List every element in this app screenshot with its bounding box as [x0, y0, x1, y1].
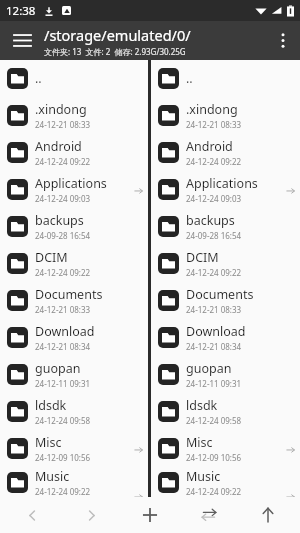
staticText: 24-12-11 09:31 [186, 378, 242, 389]
staticText: guopan [35, 360, 81, 377]
staticText: DCIM [35, 249, 68, 266]
button[interactable]: guopan [151, 356, 300, 393]
staticText: Misc [186, 434, 213, 451]
staticText: 24-12-24 09:22 [186, 156, 242, 167]
button[interactable]: More options [266, 21, 300, 60]
staticText: Download [35, 323, 95, 340]
staticText: Documents [186, 286, 254, 303]
staticText: .. [186, 70, 193, 87]
button[interactable]: Go to parent folder [241, 497, 295, 533]
button[interactable]: Android [151, 134, 300, 171]
staticText: 24-12-24 09:22 [186, 486, 242, 497]
button[interactable]: Applications [0, 171, 148, 208]
staticText: 24-12-09 10:56 [186, 452, 242, 463]
staticText: 24-12-21 08:33 [186, 304, 242, 315]
staticText: 24-12-21 08:34 [186, 341, 242, 352]
button[interactable]: Open navigation menu [0, 21, 44, 60]
staticText: 24-12-24 09:22 [186, 267, 242, 278]
button[interactable]: Android [0, 134, 148, 171]
button[interactable]: ldsdk [151, 393, 300, 430]
staticText: Android [35, 138, 82, 155]
staticText: 24-12-11 09:31 [35, 378, 91, 389]
button[interactable]: Swap panes [182, 497, 236, 533]
staticText: backups [35, 212, 84, 229]
staticText: 24-12-21 08:33 [35, 304, 91, 315]
button[interactable]: .. [0, 60, 148, 97]
staticText: 文件夹: 13 文件: 2 储存: 2.93G/30.25G [44, 46, 186, 57]
button[interactable]: .xindong [0, 97, 148, 134]
staticText: guopan [186, 360, 232, 377]
staticText: .xindong [35, 101, 87, 118]
staticText: Misc [35, 434, 62, 451]
button[interactable]: backups [151, 208, 300, 245]
button[interactable]: Download [0, 319, 148, 356]
button[interactable]: DCIM [0, 245, 148, 282]
button[interactable]: Misc [0, 430, 148, 467]
button[interactable]: guopan [0, 356, 148, 393]
button[interactable]: Documents [0, 282, 148, 319]
button[interactable]: Music [151, 467, 300, 497]
button[interactable]: .. [151, 60, 300, 97]
button[interactable]: Navigate forward [64, 497, 118, 533]
staticText: Music [186, 468, 221, 485]
button[interactable]: ldsdk [0, 393, 148, 430]
staticText: /storage/emulated/0/ [44, 25, 191, 45]
button[interactable]: Create new [123, 497, 177, 533]
staticText: Download [186, 323, 246, 340]
staticText: 24-12-21 08:34 [35, 341, 91, 352]
staticText: Android [186, 138, 233, 155]
staticText: 24-12-24 09:22 [35, 156, 91, 167]
staticText: 24-12-24 09:58 [186, 415, 242, 426]
staticText: ldsdk [35, 397, 67, 414]
staticText: 24-12-24 09:22 [35, 486, 91, 497]
staticText: 24-12-24 09:22 [35, 267, 91, 278]
button[interactable]: Music [0, 467, 148, 497]
staticText: 24-12-24 09:03 [186, 193, 242, 204]
staticText: Documents [35, 286, 103, 303]
button[interactable]: DCIM [151, 245, 300, 282]
button[interactable]: Download [151, 319, 300, 356]
button[interactable]: Navigate back [5, 497, 59, 533]
staticText: Music [35, 468, 70, 485]
staticText: DCIM [186, 249, 219, 266]
button[interactable]: Misc [151, 430, 300, 467]
button[interactable]: Applications [151, 171, 300, 208]
staticText: .xindong [186, 101, 238, 118]
staticText: .. [35, 70, 42, 87]
staticText: Applications [186, 175, 258, 192]
staticText: 24-12-21 08:33 [186, 119, 242, 130]
staticText: 24-12-21 08:33 [35, 119, 91, 130]
staticText: 12:38 [6, 3, 36, 19]
staticText: Applications [35, 175, 107, 192]
staticText: 24-12-24 09:58 [35, 415, 91, 426]
button[interactable]: .xindong [151, 97, 300, 134]
staticText: 24-12-24 09:03 [35, 193, 91, 204]
staticText: backups [186, 212, 235, 229]
staticText: 24-09-28 16:54 [186, 230, 242, 241]
staticText: 24-12-09 10:56 [35, 452, 91, 463]
staticText: 24-09-28 16:54 [35, 230, 91, 241]
button[interactable]: Documents [151, 282, 300, 319]
staticText: ldsdk [186, 397, 218, 414]
button[interactable]: backups [0, 208, 148, 245]
